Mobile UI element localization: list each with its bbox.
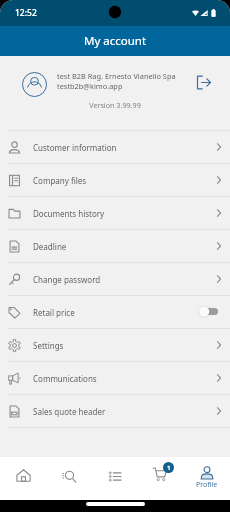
staticText: My account bbox=[84, 33, 147, 49]
staticText: testb2b@kimo.app bbox=[57, 81, 123, 91]
button[interactable]: Documents history bbox=[0, 197, 230, 229]
staticText: 12:52 bbox=[15, 7, 37, 19]
staticText: Version 3.99.99 bbox=[89, 100, 141, 110]
staticText: Settings bbox=[33, 340, 64, 351]
staticText: Change password bbox=[33, 274, 101, 285]
staticText: test B2B Rag. Ernesto Vianello Spa bbox=[57, 71, 176, 81]
staticText: Company files bbox=[33, 175, 87, 186]
staticText: Profile bbox=[196, 480, 218, 490]
button[interactable]: Retail price bbox=[0, 296, 230, 328]
button[interactable]: Sales quote header bbox=[0, 395, 230, 427]
staticText: Customer information bbox=[33, 142, 117, 153]
button[interactable]: Search bbox=[46, 457, 92, 500]
staticText: Sales quote header bbox=[33, 406, 106, 417]
button[interactable]: Change password bbox=[0, 263, 230, 295]
staticText: Communications bbox=[33, 373, 97, 384]
button[interactable]: Profile bbox=[184, 457, 230, 500]
button[interactable]: Customer information bbox=[0, 131, 230, 163]
button[interactable]: Settings bbox=[0, 329, 230, 361]
button[interactable]: Company files bbox=[0, 164, 230, 196]
staticText: Retail price bbox=[33, 307, 75, 318]
button[interactable]: List bbox=[92, 457, 138, 500]
button[interactable]: Cart bbox=[138, 457, 184, 500]
staticText: Deadline bbox=[33, 241, 67, 252]
button[interactable]: Logout bbox=[191, 70, 215, 94]
button[interactable]: Deadline bbox=[0, 230, 230, 262]
staticText: Documents history bbox=[33, 208, 105, 219]
button[interactable]: Communications bbox=[0, 362, 230, 394]
button[interactable]: Home bbox=[0, 457, 46, 500]
